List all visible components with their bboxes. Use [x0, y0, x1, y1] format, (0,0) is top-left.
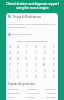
staticText: drugs interactions	[8, 26, 27, 29]
button[interactable]: R	[49, 56, 58, 62]
staticText: 1	[26, 69, 28, 73]
button[interactable]: 3	[40, 68, 49, 74]
button[interactable]: 8	[31, 74, 40, 80]
staticText: 5	[9, 75, 11, 79]
button[interactable]: X	[49, 62, 58, 68]
staticText: The easiest way to find drugs informatio…	[8, 23, 56, 26]
staticText: Ibuprofen	[46, 88, 56, 91]
staticText: N	[17, 57, 19, 61]
button[interactable]: Ibuprofen	[46, 88, 56, 91]
staticText: W	[43, 63, 46, 67]
button[interactable]: 9	[40, 74, 49, 80]
button[interactable]: K	[40, 50, 49, 56]
button[interactable]: 7	[22, 74, 31, 80]
button[interactable]: I	[22, 50, 31, 56]
button[interactable]: 5	[6, 74, 14, 80]
button[interactable]: M	[6, 56, 14, 62]
staticText: 8	[35, 75, 37, 79]
staticText: I	[26, 51, 27, 55]
staticText: C	[26, 45, 28, 49]
button[interactable]: Z	[14, 68, 22, 74]
staticText: Metformin	[27, 88, 38, 91]
staticText: L	[53, 51, 55, 55]
staticText: Aspirin	[8, 96, 15, 99]
staticText: Omeprazole	[8, 92, 21, 95]
staticText: 6	[17, 75, 19, 79]
button[interactable]: C	[22, 44, 31, 50]
staticText: Prednisone	[28, 92, 40, 95]
button[interactable]: 2	[31, 68, 40, 74]
button[interactable]: G	[6, 50, 14, 56]
staticText: M	[9, 57, 12, 61]
staticText: 7	[26, 75, 28, 79]
button[interactable]: Amoxicillin	[8, 88, 19, 91]
button[interactable]: D	[31, 44, 40, 50]
button[interactable]: T	[14, 62, 22, 68]
staticText: 9	[44, 75, 46, 79]
staticText: 0	[53, 75, 55, 79]
button[interactable]: Prednisone	[28, 92, 40, 95]
button[interactable]: H	[14, 50, 22, 56]
button[interactable]: 4	[49, 68, 58, 74]
staticText: Z	[17, 69, 19, 73]
button[interactable]: L	[49, 50, 58, 56]
staticText: Amoxicillin	[8, 88, 19, 91]
staticText: Q	[43, 57, 46, 61]
button[interactable]: Lisinopril	[47, 92, 56, 95]
button[interactable]: Metformin	[27, 88, 38, 91]
button[interactable]: Enter a drug name	[6, 32, 58, 36]
button[interactable]: Aspirin	[8, 96, 15, 99]
staticText: U	[26, 63, 28, 67]
button[interactable]: Omeprazole	[8, 92, 21, 95]
button[interactable]: U	[22, 62, 31, 68]
staticText: Y	[9, 69, 11, 73]
button[interactable]: J	[31, 50, 40, 56]
button[interactable]: O	[22, 56, 31, 62]
staticText: P	[35, 57, 37, 61]
button[interactable]: S	[6, 62, 14, 68]
staticText: 3	[44, 69, 46, 73]
staticText: A	[9, 45, 11, 49]
staticText: E	[44, 45, 46, 49]
button[interactable]: A	[6, 44, 14, 50]
staticText: X	[53, 63, 55, 67]
button[interactable]: B	[14, 44, 22, 50]
button[interactable]: Losartan	[26, 96, 35, 99]
button[interactable]: Y	[6, 68, 14, 74]
staticText: Sertraline	[46, 96, 56, 99]
button[interactable]: V	[31, 62, 40, 68]
staticText: R	[53, 57, 55, 61]
button[interactable]: Sertraline	[46, 96, 56, 99]
staticText: Enter a drug name	[12, 33, 32, 36]
staticText: T	[17, 63, 19, 67]
button[interactable]: N	[14, 56, 22, 62]
staticText: H	[17, 51, 19, 55]
staticText: Popular drug searches	[8, 82, 35, 85]
staticText: 4	[53, 69, 55, 73]
button[interactable]: 1	[22, 68, 31, 74]
staticText: B	[17, 45, 19, 49]
staticText: Clinical decision and diagnosis support	[6, 2, 59, 6]
staticText: O	[25, 57, 28, 61]
button[interactable]: 6	[14, 74, 22, 80]
staticText: F	[53, 45, 55, 49]
button[interactable]: F	[49, 44, 58, 50]
staticText: D	[35, 45, 37, 49]
staticText: G	[9, 51, 11, 55]
staticText: V	[35, 63, 37, 67]
button[interactable]: 0	[49, 74, 58, 80]
button[interactable]: Drugs & Medications	[6, 13, 58, 20]
staticText: Losartan	[26, 96, 35, 99]
staticText: S	[9, 63, 11, 67]
button[interactable]: E	[40, 44, 49, 50]
staticText: 2	[35, 69, 37, 73]
button[interactable]: W	[40, 62, 49, 68]
staticText: Find A-Z list of medications	[6, 39, 58, 42]
button[interactable]: Q	[40, 56, 49, 62]
staticText: Drugs & Medications	[13, 15, 41, 19]
staticText: using the search engine	[16, 6, 49, 10]
button[interactable]: P	[31, 56, 40, 62]
staticText: K	[44, 51, 46, 55]
staticText: Lisinopril	[47, 92, 56, 95]
